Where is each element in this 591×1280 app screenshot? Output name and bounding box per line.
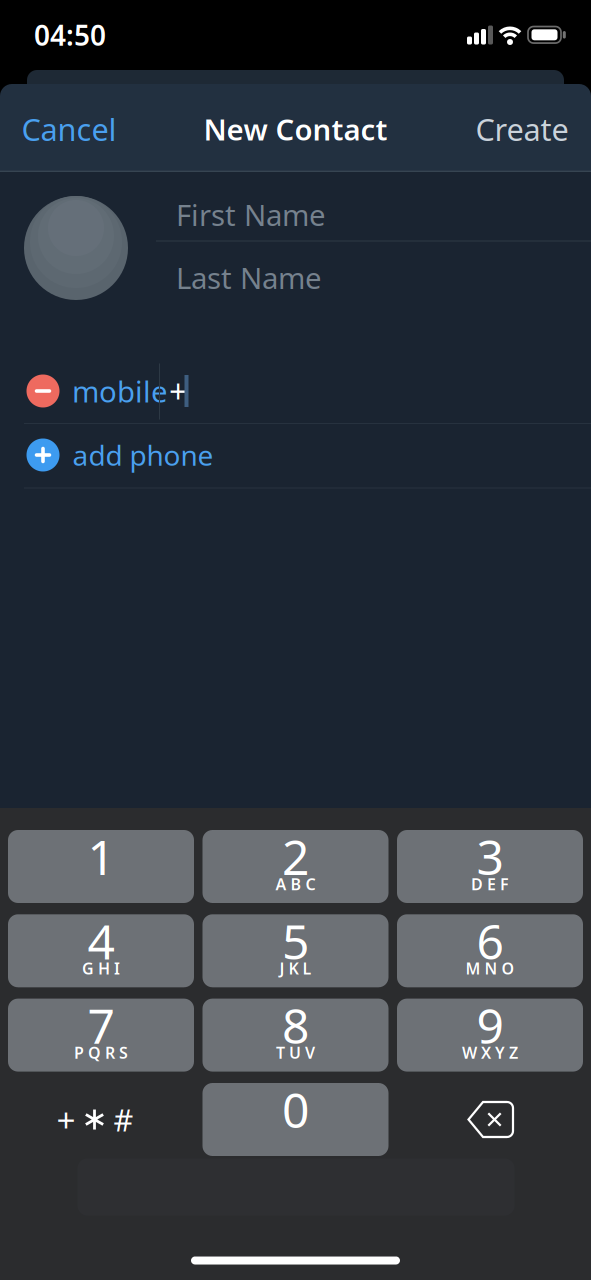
staticText: 9	[476, 993, 503, 1057]
staticText: M N O	[465, 958, 514, 979]
staticText: add phone	[72, 436, 213, 474]
staticText: Last Name	[176, 258, 322, 297]
staticText: 7	[87, 993, 114, 1057]
staticText: W X Y Z	[462, 1042, 518, 1063]
button[interactable]: 0	[202, 1083, 388, 1156]
button[interactable]: 8	[202, 999, 388, 1072]
button[interactable]	[24, 196, 128, 300]
staticText: 2	[282, 825, 309, 888]
staticText: 1	[87, 825, 114, 888]
button[interactable]: 7	[8, 999, 194, 1072]
button[interactable]: add phone	[0, 423, 591, 487]
button[interactable]	[26, 374, 59, 407]
button[interactable]: 9	[397, 999, 583, 1072]
staticText: D E F	[471, 873, 509, 895]
staticText: 8	[282, 993, 309, 1057]
button[interactable]: Create	[475, 109, 568, 149]
staticText: J K L	[279, 958, 311, 979]
button[interactable]: 3	[397, 830, 583, 903]
staticText: G H I	[82, 958, 120, 979]
staticText: 4	[87, 909, 114, 973]
staticText: +	[56, 1097, 75, 1142]
staticText: mobile	[72, 371, 168, 410]
staticText: A B C	[275, 873, 315, 895]
staticText: 5	[282, 909, 309, 973]
staticText: New Contact	[203, 109, 387, 148]
button[interactable]: +	[2, 1083, 188, 1156]
button[interactable]: 2	[202, 830, 388, 903]
staticText: 04:50	[34, 16, 106, 54]
staticText: 3	[476, 825, 503, 888]
button[interactable]: Cancel	[21, 109, 116, 149]
staticText: First Name	[176, 195, 326, 234]
staticText: T U V	[276, 1042, 315, 1063]
button[interactable]: +	[160, 363, 580, 419]
button[interactable]: Last Name	[176, 247, 591, 307]
staticText: #	[113, 1099, 133, 1140]
staticText: 0	[282, 1078, 309, 1141]
button[interactable]: First Name	[176, 184, 591, 244]
staticText: Create	[475, 109, 568, 149]
button[interactable]: mobile	[72, 363, 182, 419]
staticText: P Q R S	[74, 1042, 128, 1063]
button[interactable]: 4	[8, 914, 194, 987]
button[interactable]: 5	[202, 914, 388, 987]
button[interactable]	[398, 1083, 584, 1156]
button[interactable]: 1	[8, 830, 194, 903]
button[interactable]: 6	[397, 914, 583, 987]
staticText: +	[169, 370, 187, 412]
staticText: 6	[476, 909, 503, 973]
staticText: Cancel	[21, 109, 116, 149]
